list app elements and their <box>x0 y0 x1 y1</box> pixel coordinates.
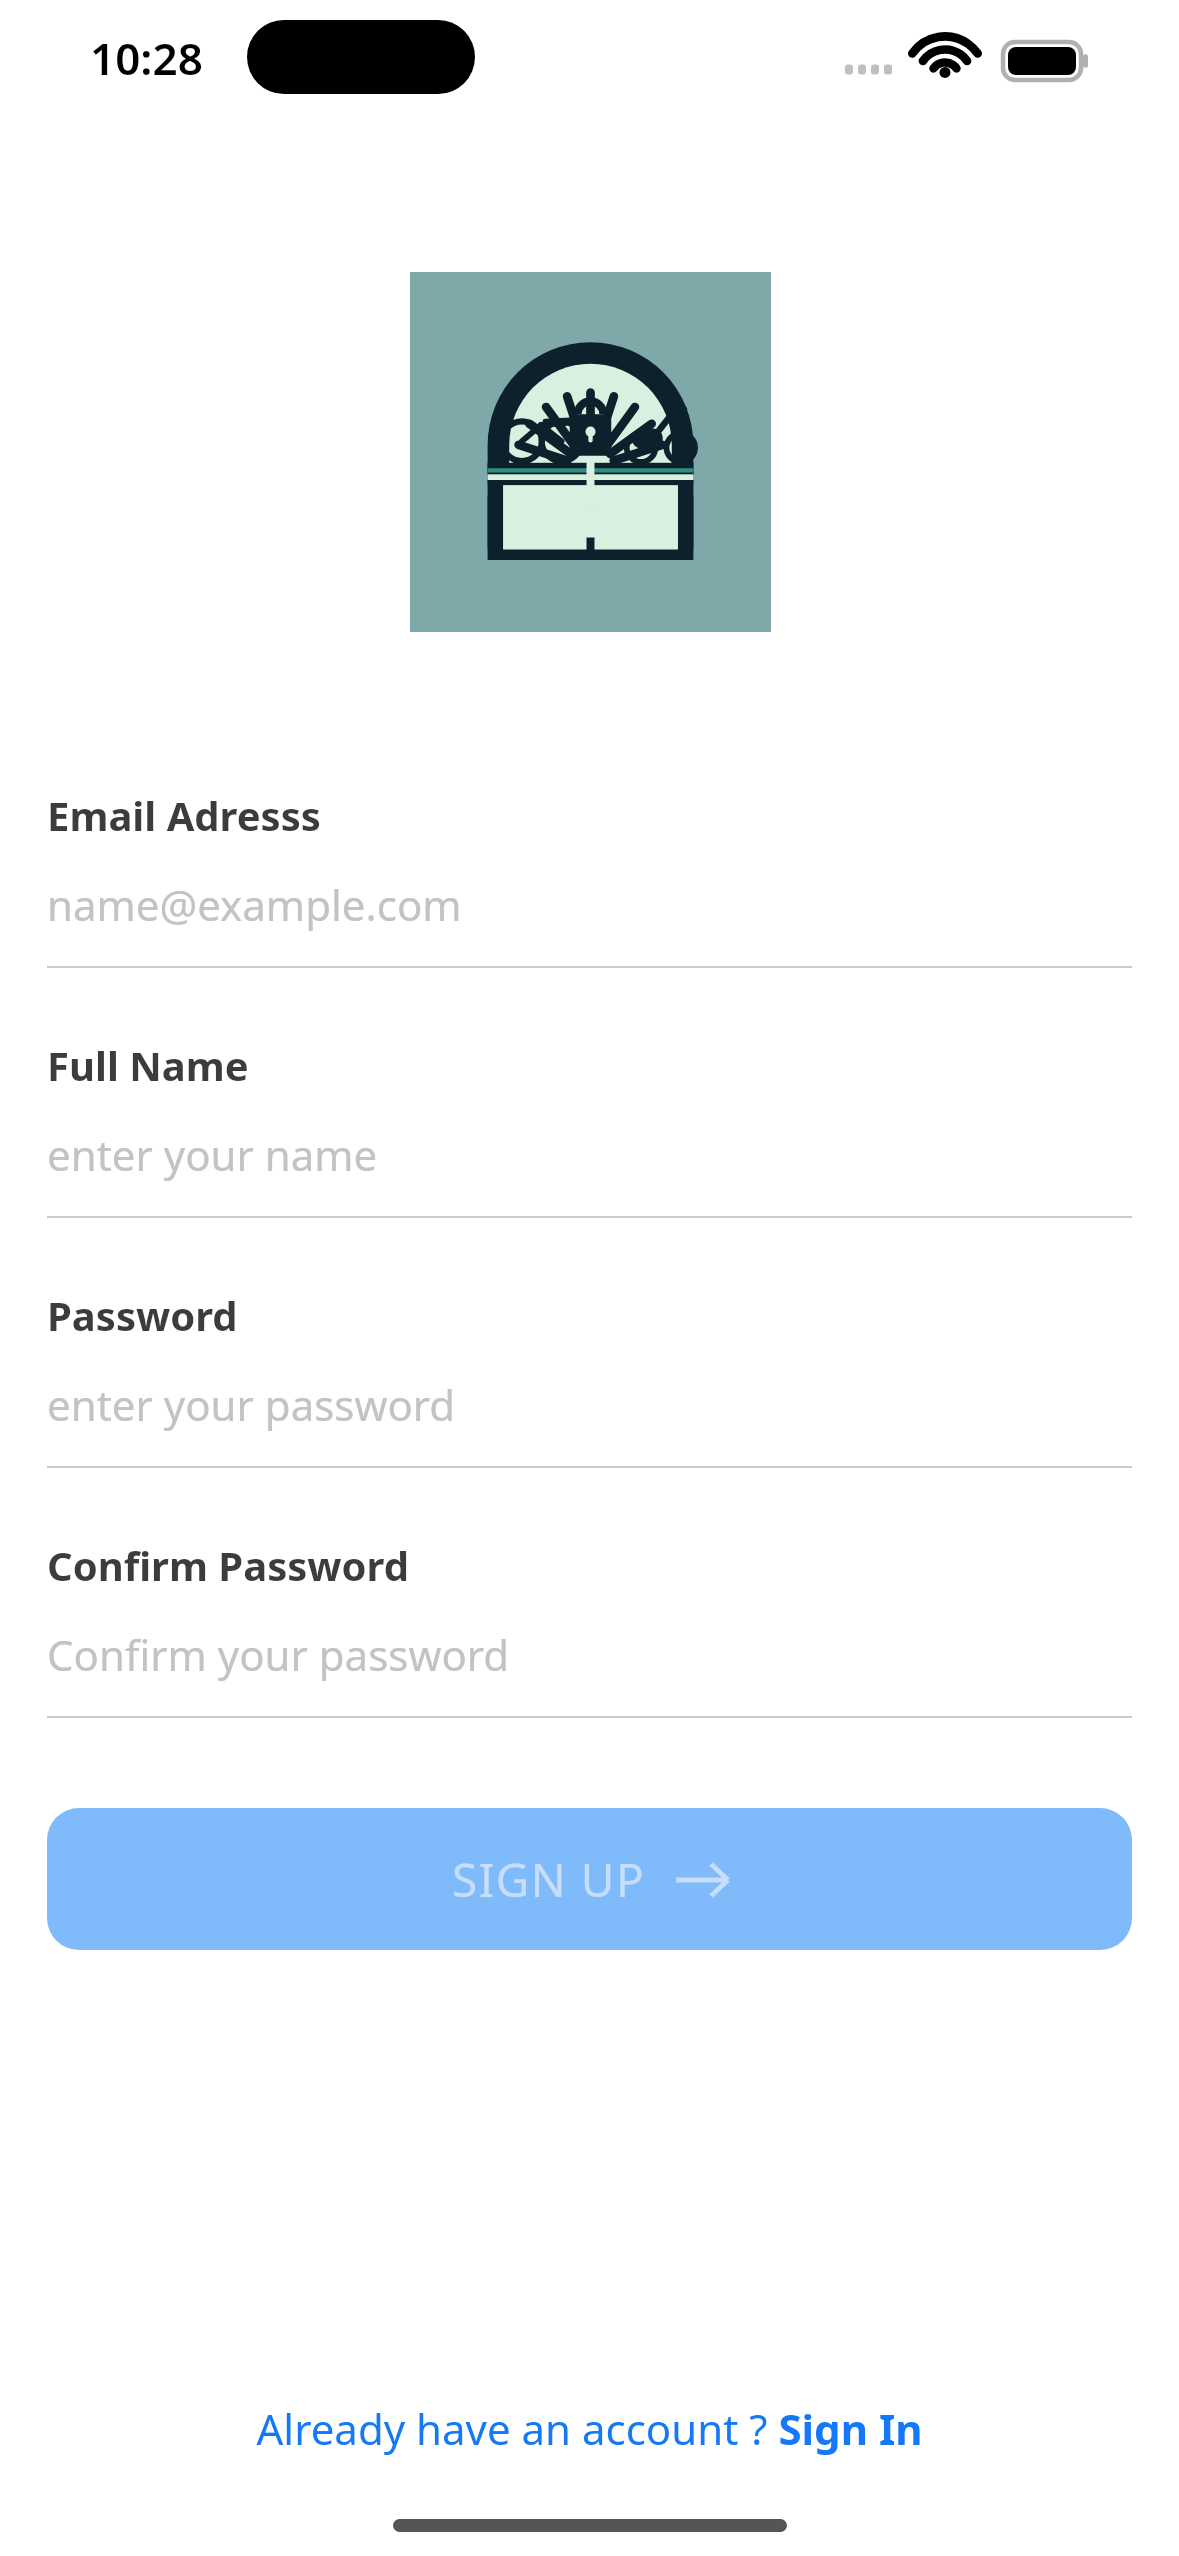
staticText: Full Name <box>47 1038 249 1092</box>
button[interactable]: Full Name <box>47 1038 1132 1220</box>
staticText: Already have an account ? Sign In <box>256 2400 923 2457</box>
staticText: Password <box>47 1288 238 1342</box>
button[interactable]: Already have an account ? Sign In <box>0 2400 1179 2490</box>
staticText: name@example.com <box>47 876 462 933</box>
staticText: Email Adresss <box>47 788 321 842</box>
button[interactable]: Password <box>47 1288 1132 1470</box>
button[interactable]: Confirm Password <box>47 1538 1132 1720</box>
staticText: enter your password <box>47 1376 456 1433</box>
staticText: Confirm your password <box>47 1626 510 1683</box>
staticText: 10:28 <box>90 28 203 88</box>
button[interactable]: Email Adresss <box>47 788 1132 970</box>
button[interactable]: SIGN UP <box>47 1808 1132 1950</box>
staticText: enter your name <box>47 1126 378 1183</box>
staticText: SIGN UP <box>452 1848 646 1911</box>
staticText: Confirm Password <box>47 1538 409 1592</box>
other: Park Charge and Lock logo <box>410 272 771 632</box>
